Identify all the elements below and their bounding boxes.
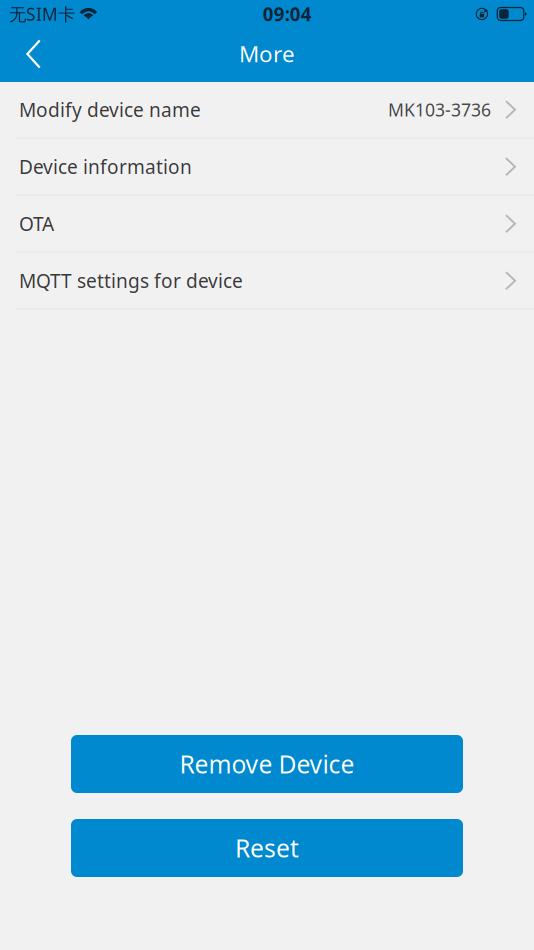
- staticText: Modify device name: [19, 97, 201, 122]
- button[interactable]: Device information: [0, 139, 534, 196]
- button[interactable]: MQTT settings for device: [0, 253, 534, 310]
- staticText: MK103-3736: [388, 98, 491, 121]
- button[interactable]: Back: [0, 28, 57, 82]
- button[interactable]: OTA: [0, 196, 534, 253]
- staticText: Device information: [19, 154, 192, 179]
- staticText: 09:04: [263, 2, 312, 26]
- staticText: 无SIM卡: [9, 2, 75, 25]
- staticText: OTA: [19, 211, 54, 236]
- staticText: Remove Device: [179, 748, 354, 780]
- button[interactable]: Remove Device: [71, 735, 463, 793]
- button[interactable]: Reset: [71, 819, 463, 877]
- button[interactable]: Modify device name: [0, 82, 534, 139]
- staticText: Reset: [235, 832, 299, 864]
- staticText: MQTT settings for device: [19, 268, 243, 293]
- staticText: More: [239, 39, 295, 68]
